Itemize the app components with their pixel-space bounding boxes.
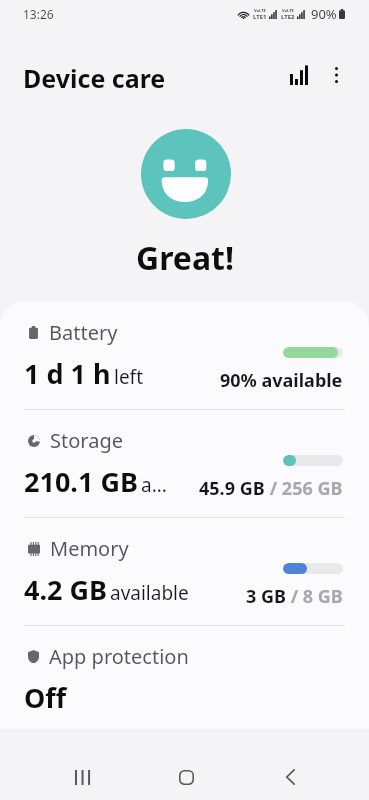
staticText: VoLTE bbox=[254, 8, 266, 13]
button[interactable]: More options bbox=[320, 58, 352, 92]
staticText: 4.2 GB bbox=[24, 571, 107, 608]
staticText: LTE1 bbox=[253, 13, 267, 21]
staticText: 3 GB bbox=[246, 584, 286, 609]
staticText: 90% bbox=[311, 5, 337, 23]
staticText: available bbox=[110, 580, 189, 606]
staticText: Off bbox=[24, 679, 67, 716]
staticText: / 8 GB bbox=[286, 584, 343, 609]
staticText: Storage bbox=[50, 427, 123, 454]
staticText: VoLTE bbox=[282, 8, 294, 13]
staticText: Great! bbox=[136, 236, 235, 280]
staticText: Memory bbox=[50, 535, 129, 562]
staticText: 13:26 bbox=[23, 6, 54, 22]
staticText: left bbox=[114, 364, 144, 390]
button[interactable]: Storage bbox=[0, 409, 369, 517]
button[interactable]: Battery bbox=[0, 301, 369, 409]
staticText: Device care bbox=[23, 61, 166, 95]
staticText: Battery bbox=[49, 319, 118, 346]
button[interactable]: Home bbox=[152, 754, 220, 800]
button[interactable]: Back bbox=[256, 754, 324, 800]
button[interactable]: Recents bbox=[48, 754, 116, 800]
staticText: 45.9 GB bbox=[199, 476, 265, 501]
button[interactable]: App protection bbox=[0, 625, 369, 729]
staticText: 1 d 1 h bbox=[24, 355, 111, 392]
staticText: / 256 GB bbox=[265, 476, 343, 501]
button[interactable]: Usage statistics bbox=[275, 58, 323, 92]
staticText: 210.1 GB bbox=[24, 463, 138, 500]
staticText: LTE2 bbox=[281, 13, 295, 21]
staticText: 90% available bbox=[220, 368, 343, 393]
staticText: App protection bbox=[49, 643, 189, 670]
button[interactable]: Memory bbox=[0, 517, 369, 625]
staticText: a... bbox=[141, 472, 167, 498]
